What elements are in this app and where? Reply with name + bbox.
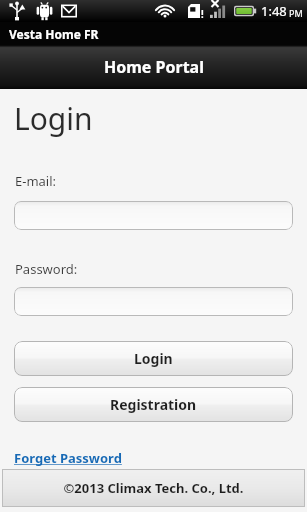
staticText: Forget Password (14, 449, 122, 467)
staticText: ©2013 Climax Tech. Co., Ltd. (2, 479, 305, 497)
staticText: Vesta Home FR (9, 26, 99, 42)
staticText: E-mail: (15, 172, 57, 190)
staticText: Registration (110, 395, 197, 414)
staticText: 1:48 (261, 2, 287, 20)
button[interactable] (14, 287, 293, 316)
staticText: Password: (15, 260, 78, 278)
button[interactable] (14, 201, 293, 230)
staticText: Login (14, 98, 93, 139)
staticText: Home Portal (104, 56, 204, 78)
staticText: Login (134, 349, 173, 368)
button[interactable]: Forget Password (14, 449, 122, 467)
staticText: PM (289, 7, 303, 19)
button[interactable]: Registration (14, 387, 293, 422)
button[interactable]: Login (14, 341, 293, 376)
